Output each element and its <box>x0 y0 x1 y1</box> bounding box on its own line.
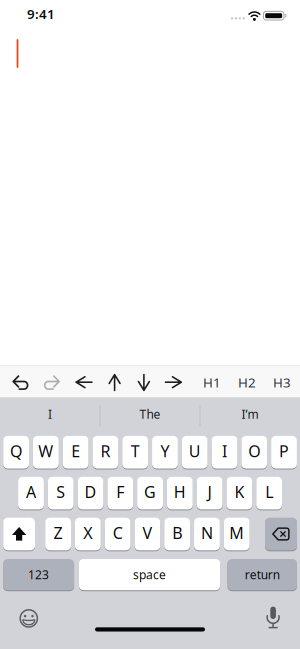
staticText: X <box>83 522 92 543</box>
staticText: H1 <box>203 373 221 391</box>
button[interactable]: C <box>105 518 130 550</box>
button[interactable]: B <box>164 518 190 550</box>
staticText: E <box>71 440 80 462</box>
button[interactable]: O <box>241 436 267 468</box>
staticText: H <box>174 481 186 502</box>
button[interactable]: The <box>102 399 198 429</box>
button[interactable]: 123 <box>3 559 74 590</box>
staticText: P <box>279 440 289 462</box>
staticText: B <box>172 522 182 543</box>
button[interactable]: R <box>92 436 118 468</box>
button[interactable]: H3 <box>268 370 296 394</box>
staticText: A <box>26 481 36 502</box>
button[interactable]: space <box>79 559 220 590</box>
button[interactable]: F <box>107 477 133 509</box>
button[interactable]: G <box>137 477 163 509</box>
staticText: The <box>139 406 160 422</box>
staticText: L <box>265 481 273 502</box>
button[interactable]: Q <box>3 436 29 468</box>
button[interactable] <box>12 375 28 391</box>
staticText: M <box>229 522 244 543</box>
staticText: space <box>133 567 166 582</box>
staticText: Q <box>10 440 22 462</box>
staticText: H2 <box>238 373 256 391</box>
staticText: W <box>38 440 53 462</box>
button[interactable]: T <box>122 436 148 468</box>
button[interactable]: D <box>78 477 103 509</box>
button[interactable]: J <box>197 477 222 509</box>
staticText: 123 <box>28 567 49 582</box>
button[interactable]: Y <box>152 436 178 468</box>
button[interactable]: H2 <box>233 370 261 394</box>
staticText: J <box>208 481 212 502</box>
button[interactable]: E <box>63 436 88 468</box>
staticText: return <box>245 567 280 582</box>
staticText: C <box>113 522 123 543</box>
button[interactable] <box>44 375 60 391</box>
button[interactable]: I <box>212 436 237 468</box>
button[interactable]: return <box>227 559 297 590</box>
staticText: I <box>48 406 52 422</box>
staticText: H3 <box>273 373 291 391</box>
button[interactable]: U <box>182 436 208 468</box>
button[interactable] <box>165 374 182 391</box>
button[interactable]: A <box>18 477 44 509</box>
staticText: Y <box>160 440 169 462</box>
staticText: I’m <box>241 406 258 422</box>
button[interactable] <box>75 374 92 391</box>
button[interactable]: M <box>224 518 250 550</box>
button[interactable]: H <box>167 477 193 509</box>
button[interactable]: V <box>134 518 160 550</box>
button[interactable]: N <box>194 518 220 550</box>
button[interactable]: Z <box>45 518 71 550</box>
button[interactable] <box>106 374 123 391</box>
button[interactable]: H1 <box>198 370 226 394</box>
button[interactable]: I <box>2 399 98 429</box>
button[interactable]: X <box>75 518 101 550</box>
staticText: I <box>222 440 227 462</box>
button[interactable]: K <box>226 477 252 509</box>
button[interactable] <box>265 518 297 550</box>
staticText: Z <box>54 522 63 543</box>
staticText: K <box>234 481 244 502</box>
staticText: 9:41 <box>27 5 55 23</box>
button[interactable]: W <box>33 436 59 468</box>
staticText: N <box>201 522 213 543</box>
button[interactable]: L <box>256 477 282 509</box>
staticText: G <box>144 481 156 502</box>
button[interactable] <box>135 374 152 391</box>
button[interactable] <box>266 606 280 629</box>
staticText: S <box>56 481 65 502</box>
button[interactable]: I’m <box>202 399 298 429</box>
staticText: U <box>189 440 201 462</box>
staticText: V <box>142 522 152 543</box>
button[interactable] <box>3 518 35 550</box>
staticText: F <box>116 481 124 502</box>
button[interactable]: P <box>271 436 297 468</box>
staticText: D <box>84 481 96 502</box>
staticText: O <box>248 440 260 462</box>
staticText: T <box>131 440 140 462</box>
staticText: R <box>100 440 110 462</box>
button[interactable]: S <box>48 477 74 509</box>
button[interactable] <box>19 609 38 628</box>
